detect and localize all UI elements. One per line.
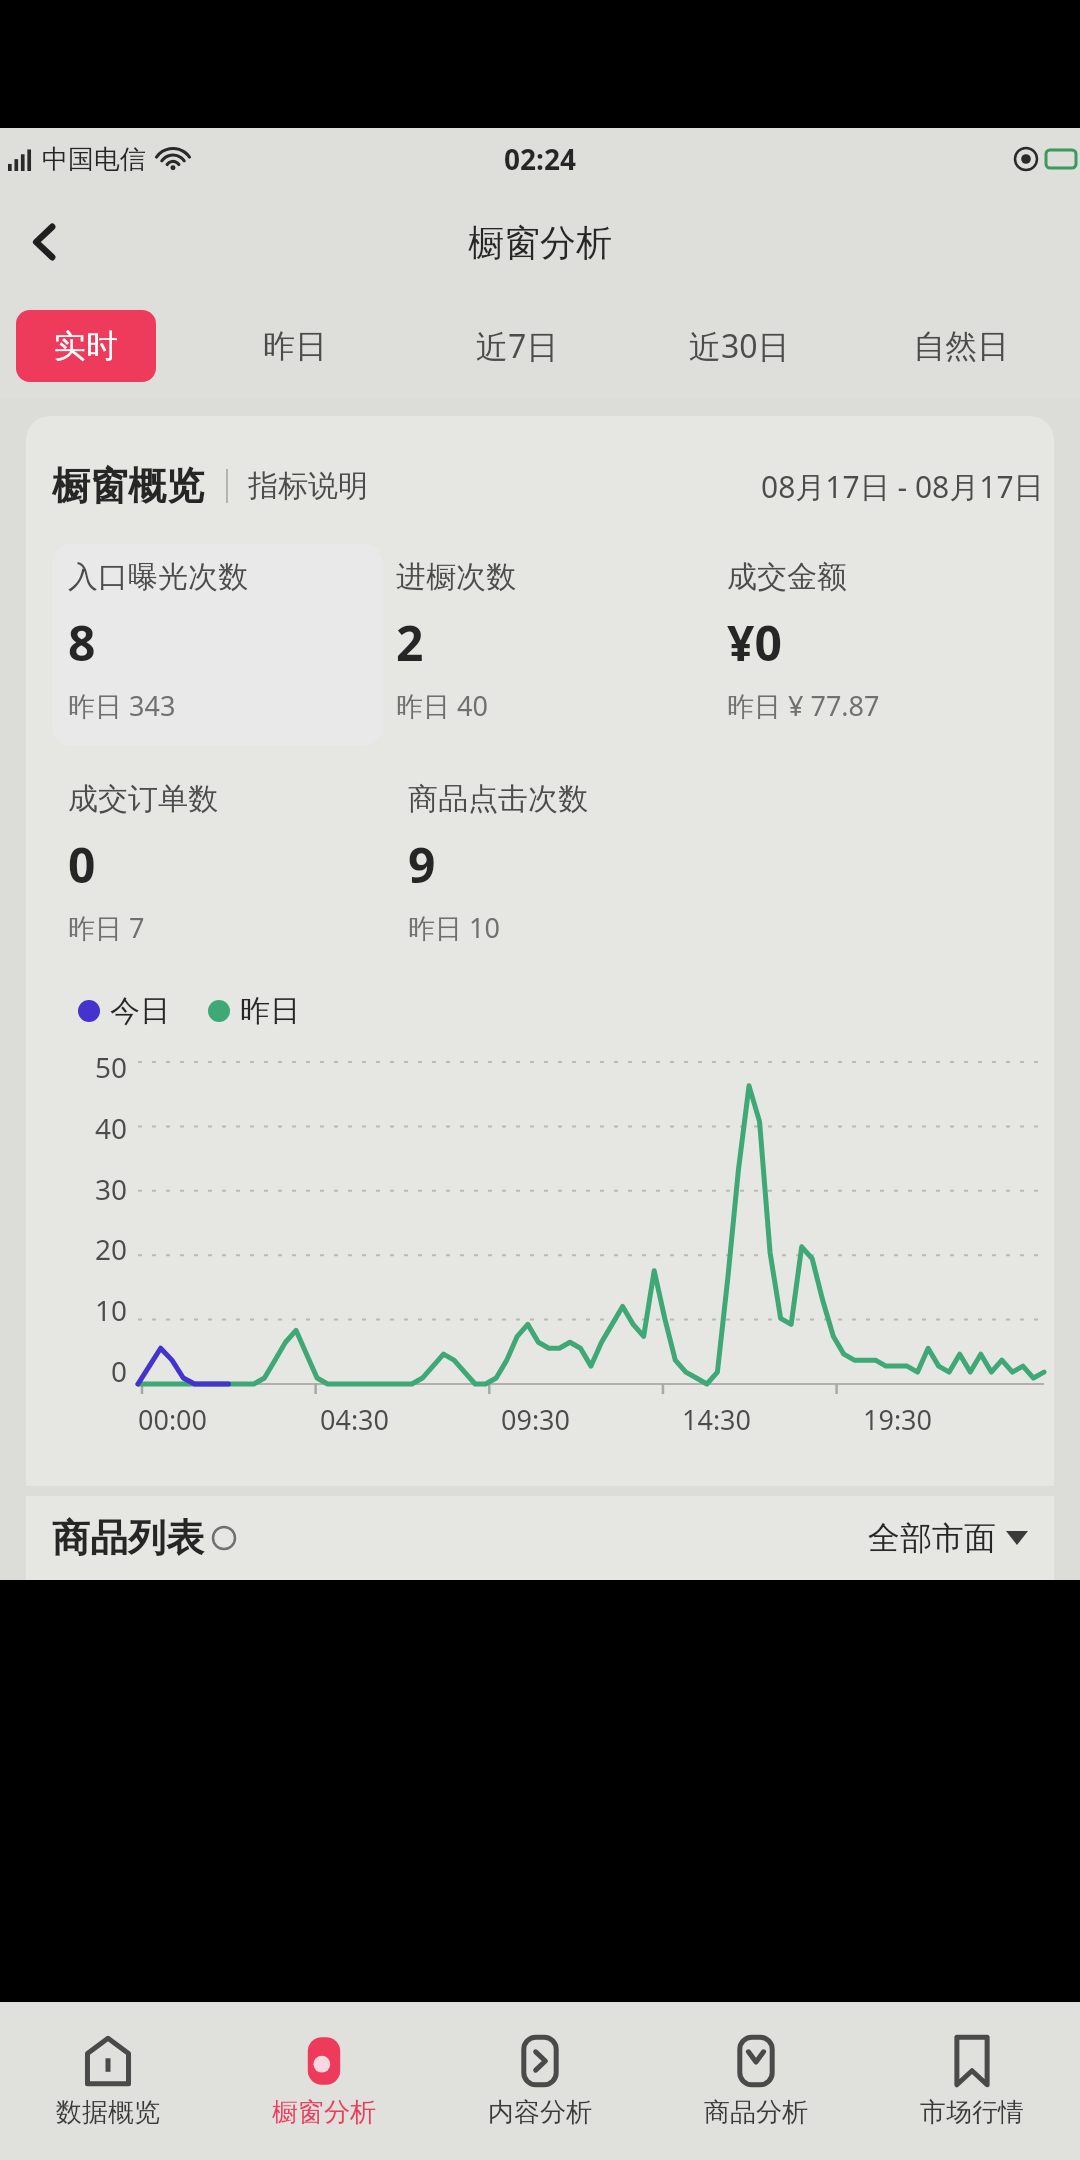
button[interactable]: 市场行情 [864, 2002, 1080, 2160]
staticText: 商品列表 [52, 1514, 204, 1562]
staticText: 商品点击次数 [408, 780, 588, 818]
staticText: 指标说明 [248, 467, 368, 505]
staticText: 数据概览 [56, 2096, 160, 2129]
staticText: 0 [111, 1352, 128, 1390]
staticText: 02:24 [504, 140, 576, 178]
button[interactable]: 昨日 [184, 310, 406, 382]
button[interactable]: 成交金额 [727, 558, 1044, 724]
staticText: 20 [95, 1230, 128, 1268]
staticText: 橱窗分析 [468, 220, 612, 265]
button[interactable]: 进橱次数 [396, 558, 713, 724]
staticText: 0 [68, 832, 96, 897]
staticText: 今日 [110, 992, 170, 1030]
button[interactable]: 入口曝光次数 [52, 544, 382, 746]
staticText: 中国电信 [42, 143, 146, 176]
staticText: 全部市面 [868, 1518, 996, 1558]
button[interactable]: 指标说明 [248, 467, 368, 505]
staticText: 10 [95, 1291, 128, 1329]
button[interactable]: 实时 [16, 310, 156, 382]
staticText: 近30日 [689, 324, 790, 368]
staticText: 昨日 343 [68, 687, 176, 724]
staticText: 19:30 [863, 1401, 933, 1438]
staticText: 昨日 10 [408, 909, 500, 946]
staticText: 昨日 ¥ 77.87 [727, 687, 880, 724]
button[interactable]: 商品点击次数 [408, 780, 719, 946]
staticText: 9 [408, 832, 436, 897]
button[interactable]: 近30日 [628, 310, 850, 382]
button[interactable]: Back [14, 211, 76, 273]
button[interactable]: 橱窗分析 [216, 2002, 432, 2160]
staticText: 08月17日 - 08月17日 [761, 466, 1044, 507]
staticText: 00:00 [138, 1401, 208, 1438]
staticText: 14:30 [682, 1401, 752, 1438]
staticText: 8 [68, 610, 96, 675]
staticText: 昨日 [263, 326, 327, 366]
staticText: 进橱次数 [396, 558, 516, 596]
button[interactable]: 商品分析 [648, 2002, 864, 2160]
button[interactable]: 近7日 [406, 310, 628, 382]
staticText: 自然日 [913, 326, 1009, 366]
staticText: 商品分析 [704, 2096, 808, 2129]
staticText: 09:30 [501, 1401, 571, 1438]
staticText: 2 [396, 610, 424, 675]
staticText: 入口曝光次数 [68, 558, 248, 596]
staticText: 04:30 [320, 1401, 390, 1438]
staticText: 成交金额 [727, 558, 847, 596]
staticText: 40 [95, 1109, 128, 1147]
staticText: 内容分析 [488, 2096, 592, 2129]
button[interactable]: 内容分析 [432, 2002, 648, 2160]
staticText: 昨日 40 [396, 687, 488, 724]
staticText: 近7日 [476, 324, 559, 368]
staticText: ¥0 [727, 610, 782, 675]
staticText: 昨日 7 [68, 909, 145, 946]
button[interactable]: 全部市面 [868, 1518, 1028, 1558]
staticText: 50 [95, 1048, 128, 1086]
staticText: 实时 [54, 326, 118, 366]
button[interactable]: 自然日 [850, 310, 1072, 382]
button[interactable]: 成交订单数 [68, 780, 394, 946]
staticText: 橱窗分析 [272, 2096, 376, 2129]
staticText: 昨日 [240, 992, 300, 1030]
staticText: 市场行情 [920, 2096, 1024, 2129]
staticText: 橱窗概览 [52, 462, 204, 510]
button[interactable]: 数据概览 [0, 2002, 216, 2160]
staticText: 成交订单数 [68, 780, 218, 818]
staticText: 30 [95, 1170, 128, 1208]
